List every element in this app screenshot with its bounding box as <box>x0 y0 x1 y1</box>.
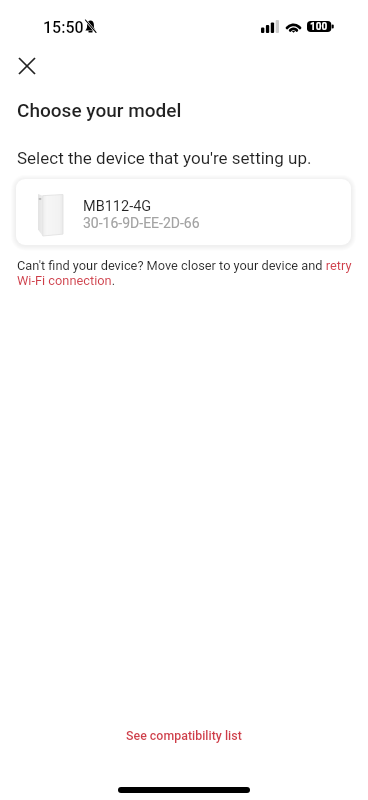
staticText: 30-16-9D-EE-2D-66 <box>83 215 200 231</box>
staticText: 15:50 <box>43 18 84 37</box>
staticText: Choose your model <box>17 99 182 121</box>
staticText: MB112-4G <box>83 198 152 215</box>
button[interactable]: Close <box>5 44 49 88</box>
staticText: See compatibility list <box>126 728 242 743</box>
staticText: Select the device that you're setting up… <box>17 148 312 168</box>
staticText: Can't find your device? Move closer to y… <box>17 258 353 288</box>
button[interactable]: See compatibility list <box>114 722 254 749</box>
staticText: 100 <box>310 21 328 32</box>
button[interactable]: MB112-4G <box>16 179 351 245</box>
